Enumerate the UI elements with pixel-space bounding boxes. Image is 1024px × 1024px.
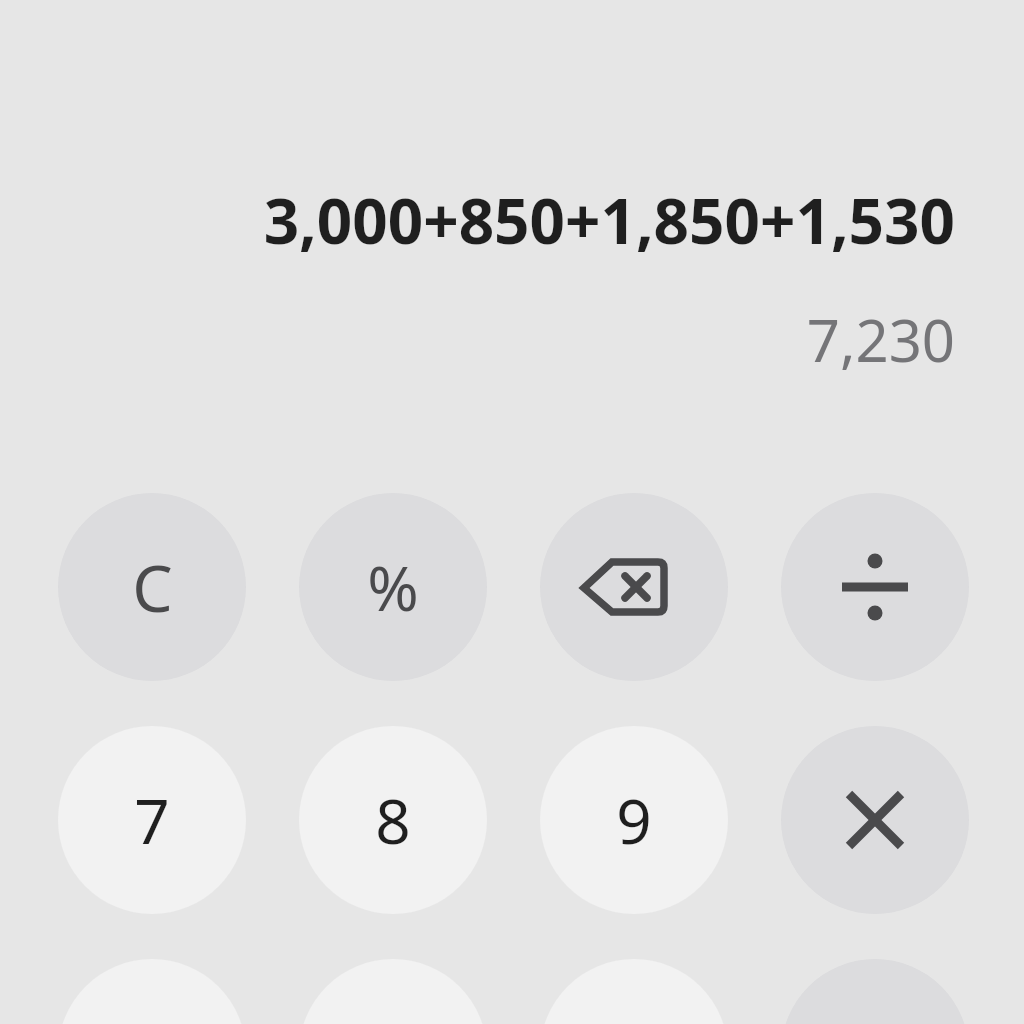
staticText: 8 [375,778,411,862]
button[interactable]: % [299,493,487,681]
button[interactable]: C [58,493,246,681]
staticText: 3,000+850+1,850+1,530 [263,178,955,262]
button[interactable]: Backspace [540,493,728,681]
button[interactable]: 8 [299,726,487,914]
button[interactable]: Divide [781,493,969,681]
button[interactable]: 5 [299,959,487,1024]
button[interactable]: 4 [58,959,246,1024]
button[interactable]: 9 [540,726,728,914]
staticText: 7,230 [806,300,955,379]
button[interactable]: Subtract [781,959,969,1024]
button[interactable]: Multiply [781,726,969,914]
staticText: 9 [616,778,652,862]
button[interactable]: 7 [58,726,246,914]
button[interactable]: 6 [540,959,728,1024]
staticText: 7 [134,778,170,862]
staticText: % [367,545,419,629]
staticText: C [132,544,173,631]
